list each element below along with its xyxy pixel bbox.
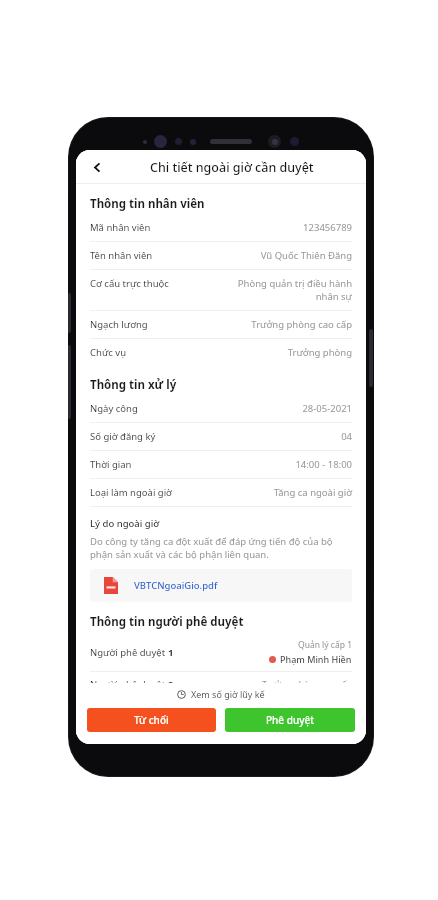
button[interactable]: Từ chối <box>87 708 216 732</box>
button[interactable]: Ngạch lương <box>90 318 352 346</box>
staticText: Ngày công <box>90 402 138 415</box>
staticText: Người phê duyệt <box>90 646 168 659</box>
staticText: Phòng quản trị điều hành nhân sự <box>213 277 352 303</box>
button[interactable]: Ngày công <box>90 402 352 430</box>
staticText: Chi tiết ngoài giờ cần duyệt <box>150 159 314 176</box>
staticText: Loại làm ngoài giờ <box>90 486 172 499</box>
staticText: Chức vụ <box>90 346 127 359</box>
button[interactable]: Cơ cấu trực thuộc <box>90 277 352 318</box>
staticText: Số giờ đăng ký <box>90 430 156 443</box>
button[interactable]: VBTCNgoaiGio.pdf <box>90 569 352 602</box>
button[interactable]: Loại làm ngoài giờ <box>90 486 352 514</box>
staticText: Vũ Quốc Thiên Đăng <box>260 249 352 262</box>
staticText: 123456789 <box>303 221 352 234</box>
staticText: Mã nhân viên <box>90 221 151 234</box>
staticText: Xem số giờ lũy kế <box>191 688 265 700</box>
button[interactable]: Số giờ đăng ký <box>90 430 352 458</box>
staticText: Do công ty tăng ca đột xuất để đáp ứng t… <box>90 535 352 561</box>
button[interactable]: Người phê duyệt <box>90 678 352 704</box>
staticText: Tên nhân viên <box>90 249 153 262</box>
staticText: Tăng ca ngoài giờ <box>273 486 352 499</box>
staticText: Quản lý cấp 1 <box>297 639 352 651</box>
staticText: 1 <box>168 646 174 659</box>
staticText: Thông tin người phê duyệt <box>90 614 244 630</box>
button[interactable]: Xem số giờ lũy kế <box>76 683 366 705</box>
button[interactable]: Người phê duyệt <box>90 639 352 678</box>
button[interactable]: Phê duyệt <box>225 708 355 732</box>
button[interactable]: Thời gian <box>90 458 352 486</box>
staticText: 04 <box>341 430 352 443</box>
staticText: Thời gian <box>90 458 132 471</box>
staticText: Lý do ngoài giờ <box>90 517 160 530</box>
button[interactable]: Back <box>84 154 110 180</box>
button[interactable]: Tên nhân viên <box>90 249 352 277</box>
staticText: 14:00 - 18:00 <box>295 458 352 471</box>
staticText: Trưởng phòng cao cấp <box>261 679 352 691</box>
staticText: Trưởng phòng cao cấp <box>251 318 352 331</box>
staticText: 28-05-2021 <box>302 402 352 415</box>
staticText: VBTCNgoaiGio.pdf <box>134 579 218 592</box>
staticText: Ngạch lương <box>90 318 148 331</box>
staticText: Thông tin xử lý <box>90 377 177 393</box>
staticText: Từ chối <box>134 713 169 727</box>
staticText: Trưởng phòng <box>287 346 352 359</box>
staticText: 2 <box>168 678 174 691</box>
staticText: Người phê duyệt <box>90 678 168 691</box>
button[interactable]: Chức vụ <box>90 346 352 367</box>
staticText: Thông tin nhân viên <box>90 196 205 212</box>
staticText: Cơ cấu trực thuộc <box>90 277 169 290</box>
button[interactable]: Mã nhân viên <box>90 221 352 249</box>
staticText: Phê duyệt <box>266 713 315 727</box>
staticText: Phạm Minh Hiền <box>280 653 352 665</box>
